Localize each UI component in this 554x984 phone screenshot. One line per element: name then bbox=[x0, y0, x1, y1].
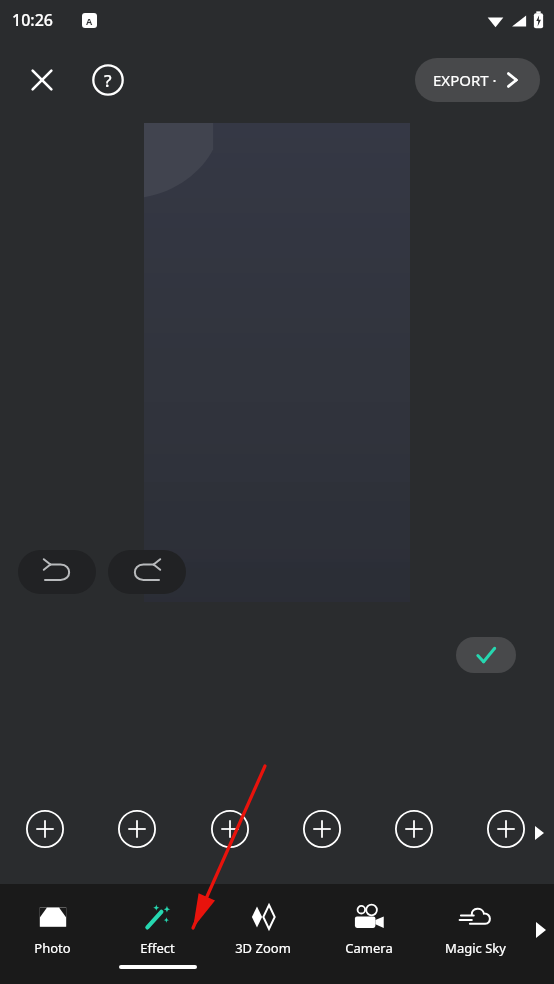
button[interactable]: More tabs bbox=[528, 884, 554, 976]
button[interactable]: Add bbox=[483, 806, 529, 852]
button[interactable]: Undo bbox=[18, 550, 96, 594]
button[interactable]: 3D Zoom bbox=[210, 884, 316, 976]
button[interactable]: Add bbox=[22, 806, 68, 852]
button[interactable]: Redo bbox=[108, 550, 186, 594]
button[interactable]: Effect bbox=[105, 884, 210, 976]
button[interactable]: Add bbox=[299, 806, 345, 852]
button[interactable]: Close bbox=[18, 56, 66, 104]
button[interactable]: More bbox=[528, 822, 550, 844]
staticText: ? bbox=[104, 69, 112, 92]
button[interactable]: Help bbox=[84, 56, 132, 104]
staticText: Camera bbox=[345, 939, 393, 957]
button[interactable]: Add bbox=[114, 806, 160, 852]
button[interactable]: Confirm bbox=[456, 637, 516, 673]
staticText: Photo bbox=[34, 939, 71, 957]
button[interactable]: Magic Sky bbox=[422, 884, 528, 976]
button[interactable]: Camera bbox=[316, 884, 422, 976]
staticText: Magic Sky bbox=[445, 939, 506, 957]
staticText: 3D Zoom bbox=[235, 939, 291, 957]
staticText: 10:26 bbox=[12, 9, 53, 31]
button[interactable]: Add bbox=[391, 806, 437, 852]
button[interactable]: Photo bbox=[0, 884, 105, 976]
staticText: A bbox=[86, 15, 93, 27]
staticText: EXPORT · bbox=[433, 70, 497, 90]
button[interactable]: EXPORT · bbox=[415, 58, 540, 102]
button[interactable]: Add bbox=[207, 806, 253, 852]
staticText: Effect bbox=[140, 939, 175, 957]
